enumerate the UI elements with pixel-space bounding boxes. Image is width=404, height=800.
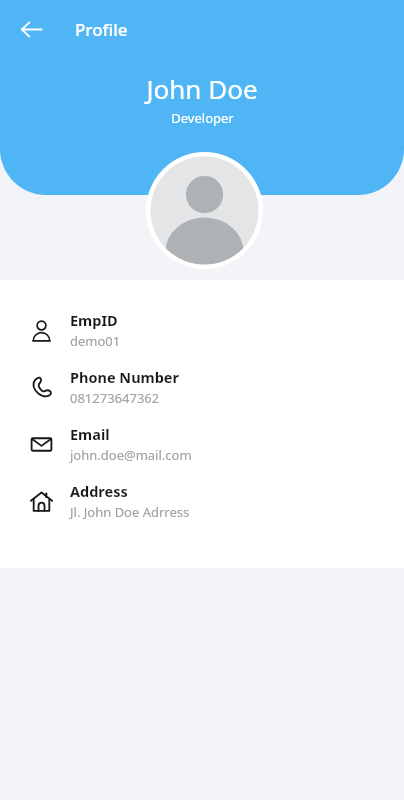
button[interactable]: EmpID — [0, 301, 404, 358]
staticText: Address — [70, 481, 128, 501]
staticText: john.doe@mail.com — [70, 446, 192, 464]
button[interactable]: Phone Number — [0, 358, 404, 415]
button[interactable]: Address — [0, 472, 404, 529]
staticText: Profile — [75, 18, 128, 41]
staticText: demo01 — [70, 332, 121, 350]
button[interactable]: Email — [0, 415, 404, 472]
button[interactable]: Back — [8, 6, 54, 52]
staticText: Email — [70, 424, 110, 444]
staticText: Developer — [171, 109, 234, 127]
staticText: Jl. John Doe Adrress — [70, 503, 190, 521]
staticText: EmpID — [70, 310, 118, 330]
staticText: John Doe — [146, 71, 258, 106]
staticText: Phone Number — [70, 367, 179, 387]
staticText: 081273647362 — [70, 389, 160, 407]
